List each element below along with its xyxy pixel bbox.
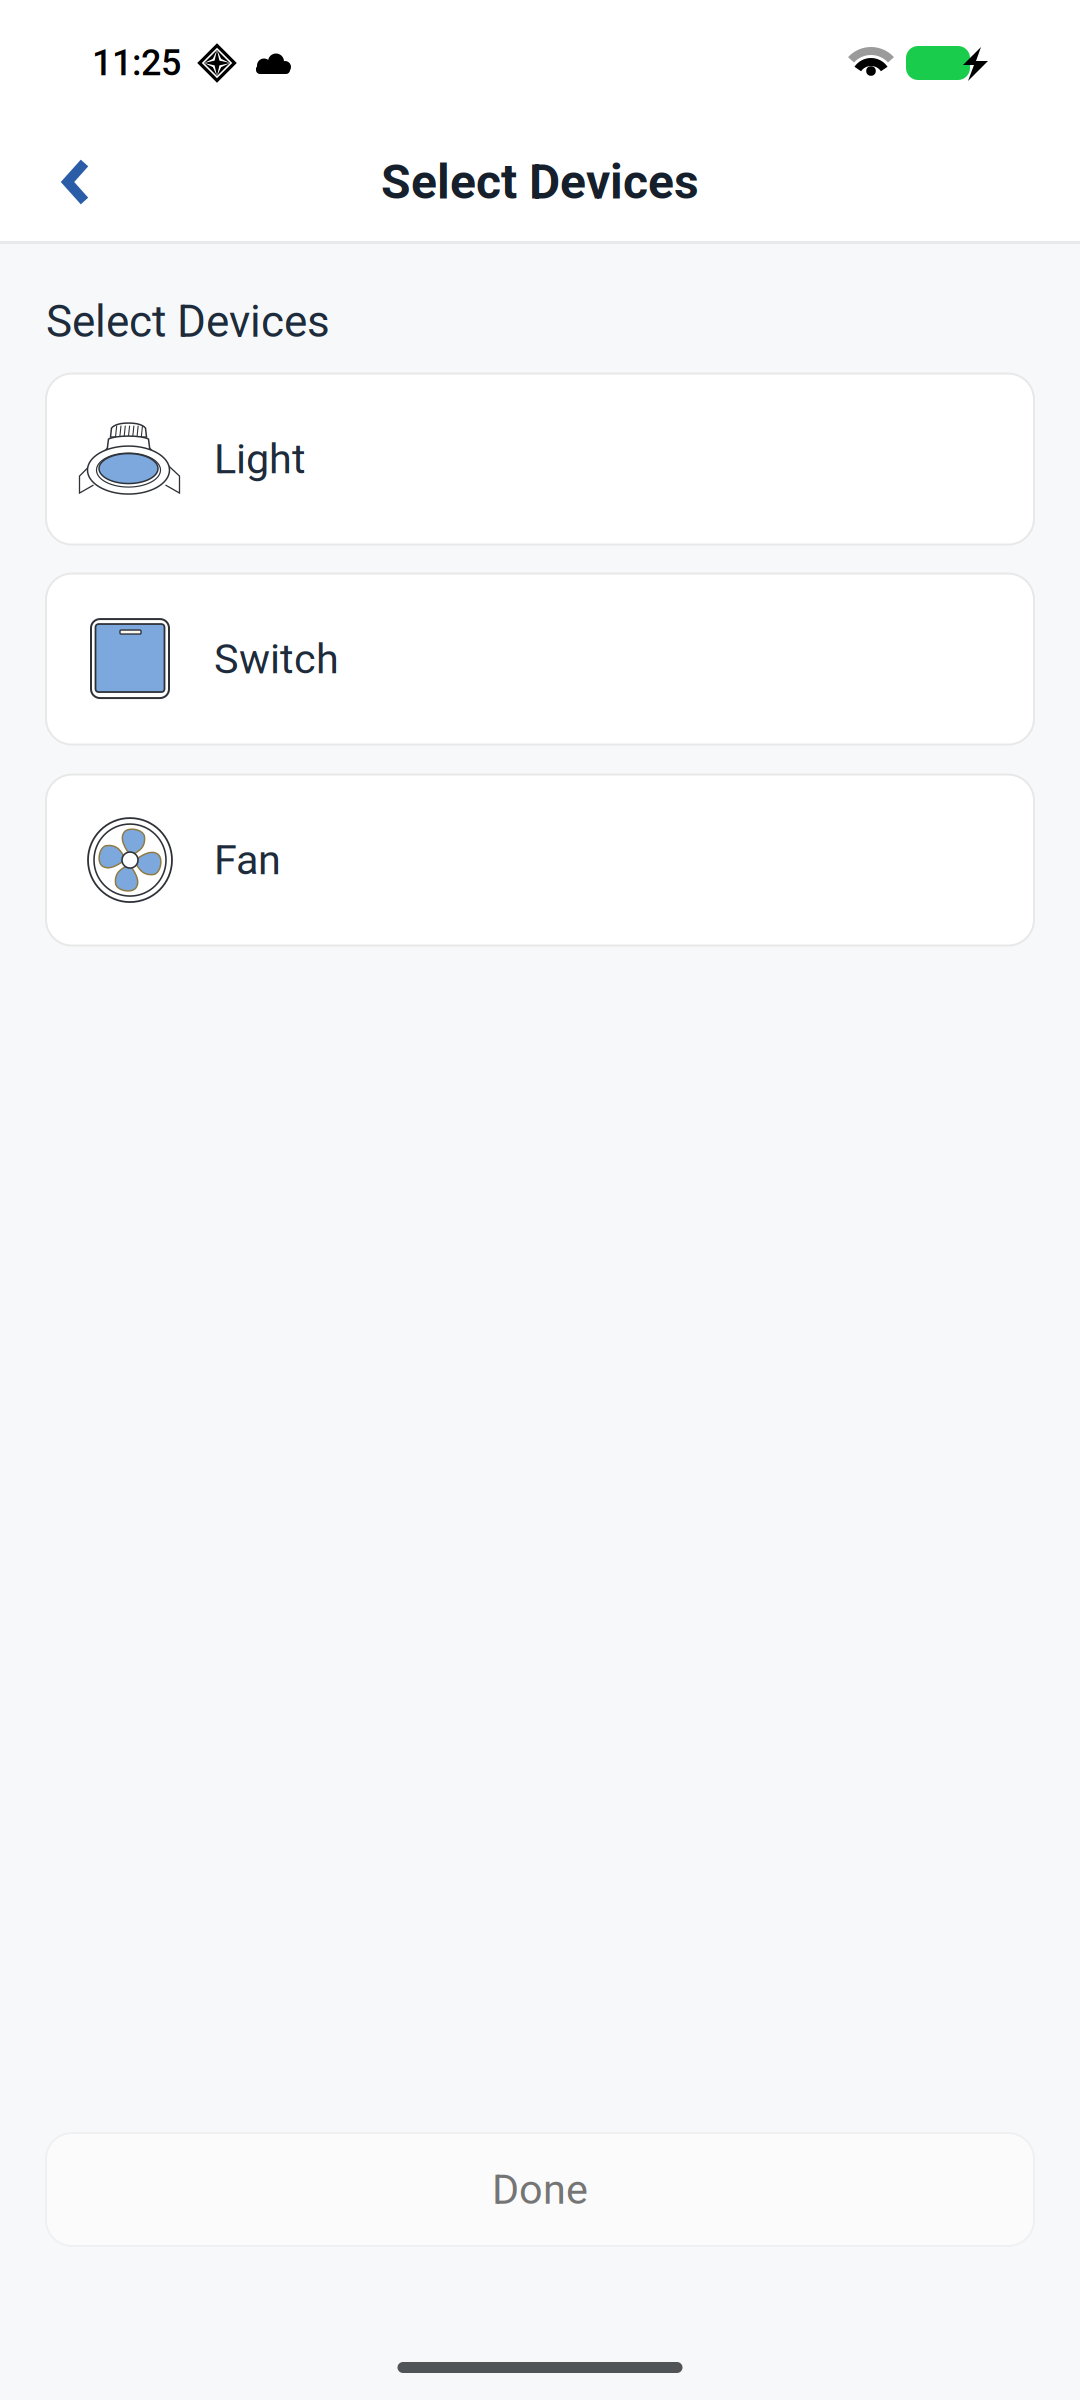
button[interactable]: Switch (46, 574, 1034, 745)
staticText: Switch (214, 635, 339, 683)
button[interactable]: Fan (46, 775, 1034, 946)
button[interactable]: Done (46, 2133, 1034, 2246)
staticText: Select Devices (46, 296, 330, 348)
staticText: Select Devices (381, 154, 699, 210)
staticText: Done (492, 2165, 588, 2214)
button[interactable]: Light (46, 374, 1034, 545)
staticText: Fan (214, 836, 281, 884)
staticText: Light (214, 435, 306, 483)
staticText: 11:25 (92, 42, 181, 84)
button[interactable]: Back (28, 132, 124, 232)
